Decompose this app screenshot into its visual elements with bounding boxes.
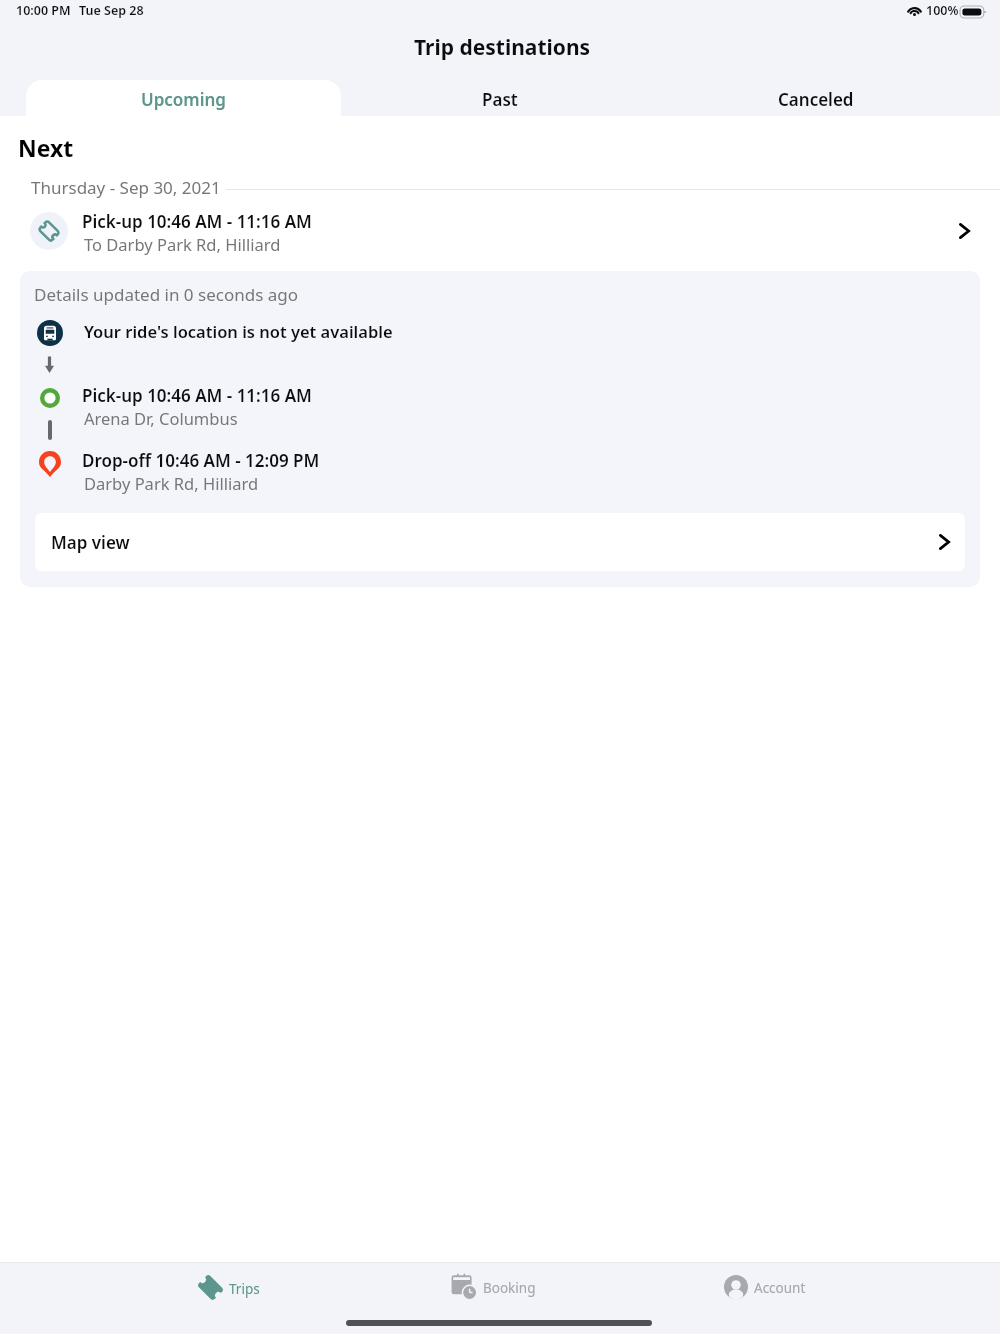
staticText: Tue Sep 28 [79,2,144,19]
staticText: Trips [229,1280,260,1298]
staticText: Canceled [778,88,854,111]
staticText: Pick-up 10:46 AM - 11:16 AM [82,210,312,233]
staticText: Booking [483,1279,536,1297]
button[interactable]: Map view [35,513,965,571]
button[interactable]: Account [714,1267,816,1307]
button[interactable]: Pick-up 10:46 AM - 11:16 AM [0,204,1000,259]
staticText: Details updated in 0 seconds ago [34,283,298,306]
button[interactable]: Trips [187,1266,270,1309]
staticText: 10:00 PM [16,2,71,19]
button[interactable]: Past [341,80,659,116]
staticText: Pick-up 10:46 AM - 11:16 AM [82,384,312,407]
staticText: Map view [51,531,130,554]
staticText: Thursday - Sep 30, 2021 [31,176,221,199]
staticText: Arena Dr, Columbus [84,407,238,429]
staticText: Your ride's location is not yet availabl… [84,320,393,342]
button[interactable]: Booking [441,1265,546,1308]
staticText: Darby Park Rd, Hilliard [84,472,259,494]
button[interactable]: Upcoming [26,80,341,120]
staticText: To Darby Park Rd, Hilliard [84,233,281,255]
staticText: 100% [926,2,959,19]
staticText: Account [754,1279,806,1297]
staticText: Past [482,88,518,111]
staticText: Next [18,132,74,163]
button[interactable]: Canceled [659,80,973,116]
staticText: Upcoming [141,88,226,111]
staticText: Drop-off 10:46 AM - 12:09 PM [82,449,320,472]
staticText: Trip destinations [414,33,591,62]
